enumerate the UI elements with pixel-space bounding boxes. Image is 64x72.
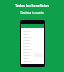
staticText: Todos los beneficios: [0, 3, 64, 8]
staticText: Gestiona tu cuenta: [0, 11, 64, 15]
